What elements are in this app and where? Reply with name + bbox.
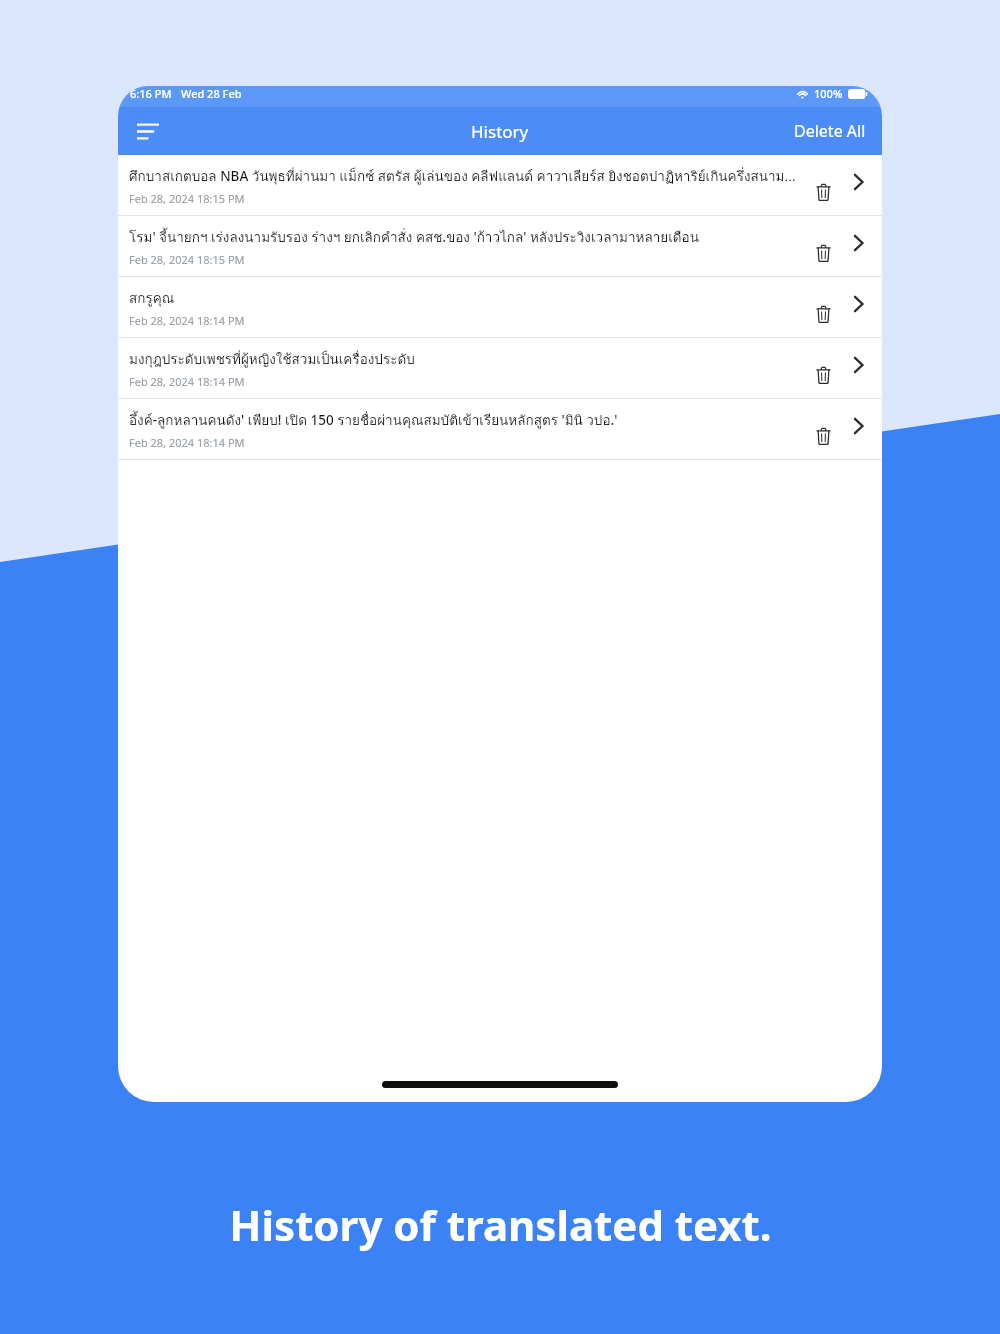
staticText: โรม' จี้นายกฯ เร่งลงนามรับรอง ร่างฯ ยกเล… <box>129 226 699 247</box>
button[interactable]: Delete <box>806 175 840 209</box>
button[interactable]: Delete <box>806 236 840 270</box>
staticText: History <box>471 120 529 143</box>
staticText: Feb 28, 2024 18:14 PM <box>129 313 245 328</box>
button[interactable]: Open <box>840 225 876 261</box>
staticText: Wed 28 Feb <box>181 86 242 101</box>
staticText: History of translated text. <box>229 1196 772 1253</box>
staticText: มงกุฎประดับเพชรที่ผู้หญิงใช้สวมเป็นเครื่… <box>129 348 415 369</box>
staticText: 100% <box>814 86 843 101</box>
button[interactable]: มงกุฎประดับเพชรที่ผู้หญิงใช้สวมเป็นเครื่… <box>118 338 882 399</box>
button[interactable]: อึ้งค์-ลูกหลานคนดัง' เพียบ! เปิด 150 ราย… <box>118 399 882 460</box>
button[interactable]: โรม' จี้นายกฯ เร่งลงนามรับรอง ร่างฯ ยกเล… <box>118 216 882 277</box>
staticText: 6:16 PM <box>130 86 172 101</box>
staticText: Feb 28, 2024 18:14 PM <box>129 374 245 389</box>
staticText: สกรูคุณ <box>129 287 175 308</box>
button[interactable]: Delete <box>806 419 840 453</box>
button[interactable]: Open <box>840 164 876 200</box>
staticText: ศึกบาสเกตบอล NBA วันพุธที่ผ่านมา แม็กซ์ … <box>129 165 798 186</box>
button[interactable]: Open <box>840 286 876 322</box>
staticText: Feb 28, 2024 18:15 PM <box>129 252 245 267</box>
staticText: Feb 28, 2024 18:15 PM <box>129 191 245 206</box>
staticText: อึ้งค์-ลูกหลานคนดัง' เพียบ! เปิด 150 ราย… <box>129 409 618 430</box>
button[interactable]: Delete <box>806 358 840 392</box>
button[interactable]: Delete All <box>778 108 882 154</box>
button[interactable]: Open <box>840 347 876 383</box>
button[interactable]: Delete <box>806 297 840 331</box>
staticText: Feb 28, 2024 18:14 PM <box>129 435 245 450</box>
button[interactable]: สกรูคุณ <box>118 277 882 338</box>
button[interactable]: ศึกบาสเกตบอล NBA วันพุธที่ผ่านมา แม็กซ์ … <box>118 155 882 216</box>
button[interactable]: Open <box>840 408 876 444</box>
button[interactable]: Menu <box>124 107 172 155</box>
staticText: Delete All <box>794 120 866 142</box>
